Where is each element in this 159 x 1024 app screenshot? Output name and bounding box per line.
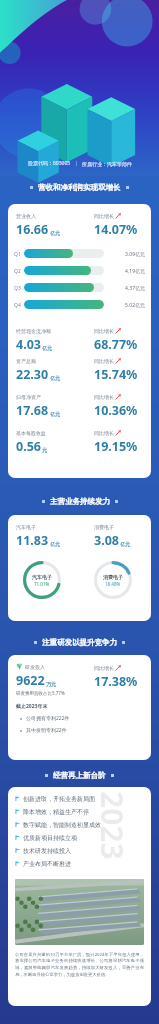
staticText: 研发投入	[25, 664, 45, 670]
staticText: 4.19亿元	[107, 268, 145, 275]
staticText: 同比增长	[94, 665, 114, 671]
staticText: 22.30	[16, 366, 49, 383]
staticText: 10.36%	[94, 402, 138, 419]
staticText: 主营业务持续发力	[50, 497, 110, 506]
staticText: 亿元	[50, 375, 60, 381]
staticText: 同比增长	[94, 430, 114, 436]
staticText: 18.48%	[105, 581, 121, 587]
staticText: 2023	[92, 791, 133, 860]
staticText: Q2	[14, 268, 21, 275]
staticText: 11.83	[16, 532, 49, 549]
staticText: 同比增长	[94, 328, 114, 334]
staticText: 亿元	[50, 541, 60, 547]
staticText: 9622	[16, 672, 45, 689]
staticText: 数字赋能，智能制造初显成效	[23, 821, 101, 829]
staticText: 汽车电子	[32, 574, 52, 580]
staticText: 亿元	[42, 345, 52, 351]
staticText: 0.56	[16, 438, 41, 455]
staticText: Q3	[14, 285, 21, 292]
staticText: 消费电子	[103, 574, 123, 580]
staticText: 3.08	[94, 532, 119, 549]
staticText: 营收和净利润实现双增长	[38, 183, 121, 192]
staticText: 3.09亿元	[107, 251, 145, 258]
staticText: 产业布局不断推进	[23, 860, 71, 868]
staticText: 公司在嘉兴兴建的10万平方米厂房，预计2024年下半年投入使用，将支撑公司汽车电…	[15, 951, 144, 978]
staticText: 注重研发以提升竞争力	[42, 638, 117, 647]
staticText: 4.03	[16, 336, 41, 353]
staticText: 同比增长	[94, 213, 114, 219]
staticText: 降本增效，精益生产不停	[23, 808, 89, 816]
staticText: 万元	[46, 681, 56, 687]
staticText: 汽车电子	[16, 524, 36, 530]
staticText: 经营现金流净额	[16, 328, 51, 334]
staticText: |	[71, 160, 82, 167]
staticText: 消费电子	[94, 524, 114, 530]
staticText: 亿元	[50, 411, 60, 417]
staticText: 68.77%	[94, 336, 138, 353]
staticText: 16.66	[16, 221, 49, 238]
staticText: 同比增长	[94, 394, 114, 400]
staticText: 19.15%	[94, 438, 138, 455]
staticText: 4.37亿元	[107, 285, 145, 292]
staticText: 17.68	[16, 402, 49, 419]
staticText: 公司拥有专利222件	[26, 715, 70, 722]
staticText: 经营再上新台阶	[53, 771, 106, 780]
staticText: 创新进取，开拓业务新局面	[23, 795, 95, 803]
staticText: 归母净资产	[16, 394, 41, 400]
staticText: 亿元	[120, 541, 130, 547]
staticText: Q4	[14, 302, 21, 309]
staticText: 15.74%	[94, 366, 138, 383]
staticText: Q1	[14, 251, 21, 258]
staticText: 同比增长	[94, 358, 114, 364]
staticText: 技术研发持续投入	[23, 847, 71, 855]
staticText: 14.07%	[94, 221, 138, 238]
staticText: 研发费用营收占比5.77%	[16, 690, 65, 696]
staticText: 17.38%	[94, 673, 138, 690]
staticText: 所属行业：汽车零部件	[82, 161, 132, 167]
staticText: 资产总额	[16, 358, 36, 364]
staticText: 5.02亿元	[107, 302, 145, 309]
staticText: 亿元	[50, 230, 60, 236]
staticText: 基本每股收益	[16, 430, 46, 436]
staticText: 其中发明专利22件	[26, 727, 67, 734]
staticText: 71.01%	[34, 581, 50, 587]
staticText: 截止2023年末	[16, 703, 48, 710]
staticText: 营业收入	[16, 213, 36, 219]
staticText: 优质新项目持续立项	[23, 834, 77, 842]
staticText: 元	[42, 447, 47, 453]
staticText: 股票代码：605005	[28, 160, 71, 167]
